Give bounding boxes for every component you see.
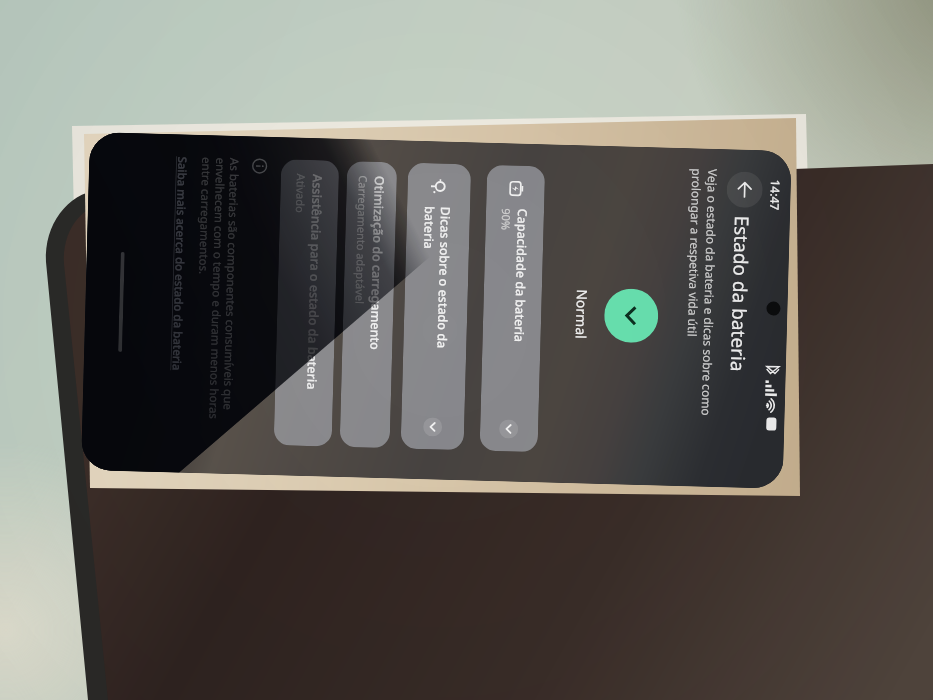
staticText: 14:47 xyxy=(767,179,784,211)
staticText: As baterias são componentes consumíveis … xyxy=(191,157,242,448)
staticText: Veja o estado da bateria e dicas sobre c… xyxy=(682,168,721,439)
staticText: Normal xyxy=(572,289,592,340)
button[interactable]: Assistência para o estado da bateria xyxy=(274,159,339,447)
button[interactable]: Estado da bateria Normal xyxy=(603,288,659,343)
staticText: Estado da bateria xyxy=(725,215,755,372)
staticText: Otimização do carregamento xyxy=(366,176,388,351)
staticText: Capacidade da bateria xyxy=(510,208,531,343)
button[interactable]: Back xyxy=(726,171,763,208)
button[interactable]: Capacidade da bateria xyxy=(479,165,545,452)
staticText: Assistência para o estado da bateria xyxy=(303,174,326,390)
button[interactable]: Otimização do carregamento xyxy=(340,161,397,448)
button[interactable]: Dicas sobre o estado da bateria xyxy=(401,163,471,450)
staticText: Saiba mais acerca do estado da bateria xyxy=(169,156,190,371)
staticText: 90% xyxy=(498,208,514,230)
staticText: Dicas sobre o estado da bateria xyxy=(417,206,454,382)
button[interactable]: Saiba mais acerca do estado da bateria xyxy=(169,156,190,371)
staticText: Ativado xyxy=(293,173,309,214)
staticText: Carregamento adaptável xyxy=(352,175,371,305)
